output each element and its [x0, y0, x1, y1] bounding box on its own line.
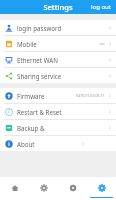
- staticText: Backup & Restore: [17, 124, 62, 132]
- button[interactable]: Tools: [58, 177, 87, 200]
- staticText: Ethernet WAN connection: [17, 56, 62, 64]
- staticText: on: [100, 41, 105, 46]
- button[interactable]: Devices: [29, 177, 58, 200]
- staticText: V470.01.03.06.11: [76, 93, 105, 98]
- staticText: log out: [91, 3, 111, 11]
- button[interactable]: Ethernet WAN connection: [0, 52, 116, 67]
- button[interactable]: Backup & Restore: [0, 120, 116, 135]
- button[interactable]: Settings: [87, 177, 116, 200]
- button[interactable]: About: [0, 136, 116, 151]
- staticText: Mobile network: [17, 40, 58, 48]
- button[interactable]: Sharing service: [0, 68, 116, 83]
- button[interactable]: Home: [0, 177, 29, 200]
- button[interactable]: login password: [0, 20, 116, 35]
- button[interactable]: Mobile network: [0, 36, 116, 51]
- staticText: Settings: [43, 2, 73, 12]
- staticText: Firmware upgrade: [17, 92, 46, 100]
- button[interactable]: Firmware upgrade: [0, 88, 116, 103]
- button[interactable]: Restart & Reset: [0, 104, 116, 119]
- button[interactable]: log out: [86, 1, 116, 13]
- staticText: Sharing service: [17, 72, 62, 80]
- staticText: About: [17, 140, 35, 148]
- staticText: login password: [17, 24, 62, 32]
- staticText: Restart & Reset: [17, 108, 62, 116]
